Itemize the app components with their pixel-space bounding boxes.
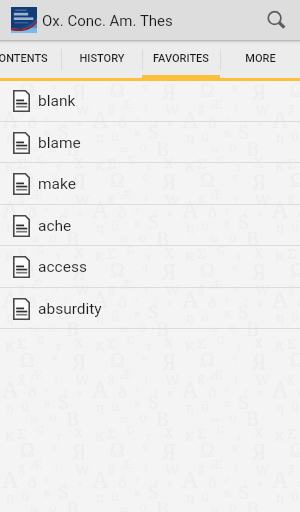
staticText: A	[92, 193, 109, 224]
staticText: ʙ	[44, 126, 50, 140]
staticText: ɾ	[135, 114, 139, 125]
staticText: Ω	[290, 77, 300, 103]
button[interactable]: absurdity	[0, 288, 300, 330]
button[interactable]: CONTENTS	[0, 41, 61, 80]
staticText: blame	[38, 134, 81, 152]
staticText: ɟ	[55, 101, 58, 113]
button[interactable]: Search	[256, 0, 300, 41]
staticText: Æ	[120, 275, 133, 293]
button[interactable]: Concise Oxford American Thesaurus	[11, 7, 37, 33]
staticText: Σ	[287, 243, 297, 263]
staticText: o	[49, 228, 57, 246]
button[interactable]: HISTORY	[61, 41, 142, 80]
button[interactable]: FAVORITES	[142, 41, 220, 80]
staticText: g	[18, 9, 25, 25]
button[interactable]: access	[0, 246, 300, 288]
staticText: ɯ	[30, 52, 39, 64]
staticText: ʃ	[244, 116, 248, 128]
staticText: B	[66, 225, 80, 252]
staticText: ʙ	[134, 36, 140, 50]
staticText: ð	[208, 22, 217, 42]
staticText: ɾ	[45, 294, 49, 305]
button[interactable]: blame	[0, 122, 300, 164]
staticText: ʙ	[44, 216, 50, 230]
staticText: A	[272, 283, 289, 314]
staticText: ʃ	[64, 116, 68, 128]
staticText: ð	[118, 202, 127, 222]
staticText: A	[182, 193, 199, 224]
staticText: ɾ	[45, 24, 49, 35]
staticText: B	[246, 225, 260, 252]
staticText: W	[255, 280, 270, 299]
button[interactable]: blank	[0, 80, 300, 122]
staticText: ache	[38, 217, 72, 235]
staticText: G	[217, 153, 225, 167]
staticText: ɟ	[55, 281, 58, 293]
staticText: Χ	[254, 243, 264, 262]
staticText: ɾ	[225, 204, 229, 215]
staticText: ŋ	[6, 308, 15, 326]
button[interactable]: ache	[0, 205, 300, 247]
staticText: ɟ	[145, 281, 148, 293]
staticText: A	[92, 103, 109, 134]
staticText: ɣ	[56, 159, 62, 171]
button[interactable]: make	[0, 163, 300, 205]
staticText: Σ	[197, 243, 207, 263]
staticText: A	[92, 13, 109, 44]
staticText: ɟ	[145, 11, 148, 23]
staticText: B	[246, 45, 260, 72]
staticText: Æ	[30, 185, 43, 203]
button[interactable]: MORE	[220, 41, 300, 80]
staticText: A	[2, 13, 19, 44]
staticText: S	[58, 298, 69, 325]
staticText: W	[75, 190, 90, 209]
staticText: A	[92, 283, 109, 314]
staticText: ü	[21, 37, 30, 55]
